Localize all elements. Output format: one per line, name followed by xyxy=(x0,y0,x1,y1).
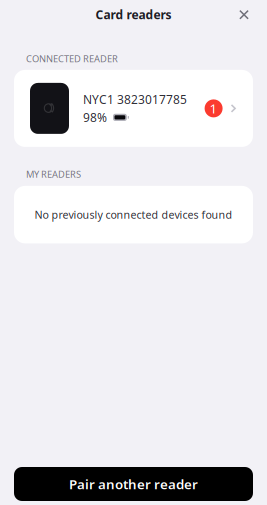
staticText: MY READERS xyxy=(26,168,81,180)
staticText: Pair another reader xyxy=(69,475,198,493)
button[interactable]: NYC1 3823017785 xyxy=(14,70,253,147)
staticText: No previously connected devices found xyxy=(34,208,232,222)
staticText: 98% xyxy=(83,109,107,125)
staticText: Card readers xyxy=(95,7,171,23)
staticText: NYC1 3823017785 xyxy=(83,91,187,107)
button[interactable]: Close xyxy=(231,2,257,28)
staticText: CONNECTED READER xyxy=(26,52,118,65)
button[interactable]: Pair another reader xyxy=(14,467,253,501)
staticText: 1 xyxy=(210,99,218,117)
